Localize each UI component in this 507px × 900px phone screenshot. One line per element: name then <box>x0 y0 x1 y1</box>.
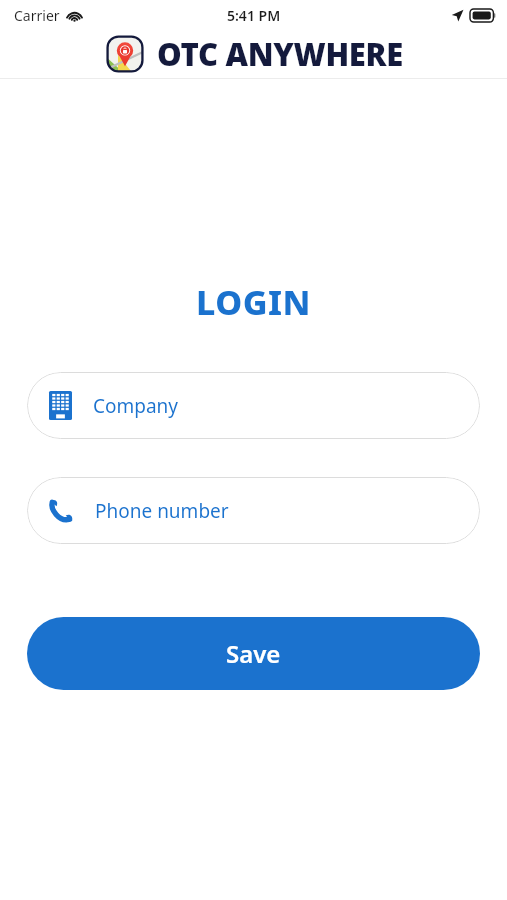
other: OTC Anywhere logo <box>104 33 146 75</box>
button[interactable]: Company <box>27 372 480 439</box>
button[interactable]: Save <box>27 617 480 690</box>
staticText: 5:41 PM <box>227 6 281 25</box>
staticText: OTC ANYWHERE <box>157 33 403 75</box>
staticText: LOGIN <box>0 279 507 325</box>
staticText: Save <box>226 637 281 670</box>
staticText: Company <box>93 393 179 419</box>
staticText: Phone number <box>95 498 229 524</box>
staticText: Carrier <box>14 6 60 25</box>
button[interactable]: Phone number <box>27 477 480 544</box>
